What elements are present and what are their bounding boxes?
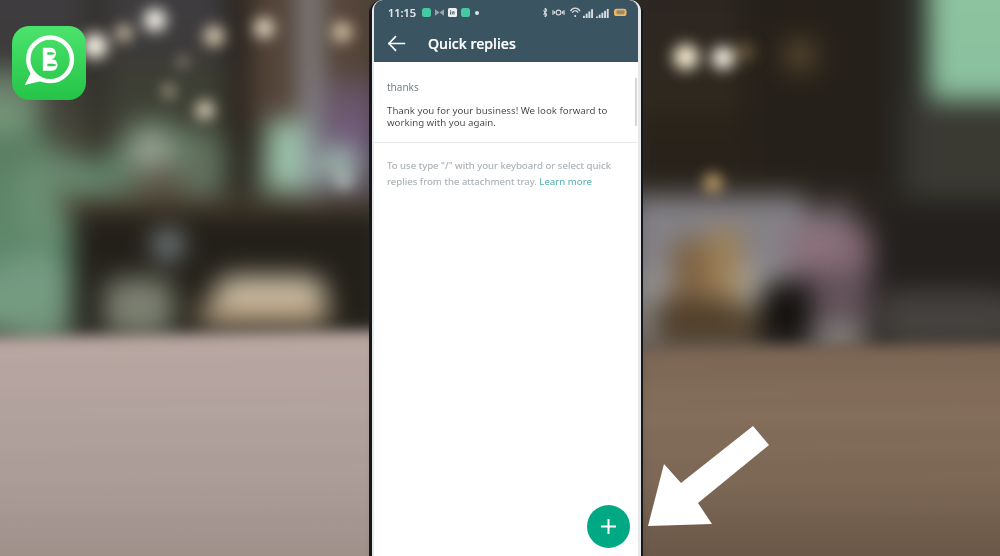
button[interactable]: Back (374, 25, 428, 62)
staticText: Thank you for your business! We look for… (387, 104, 626, 129)
staticText: To use type "/" with your keyboard or se… (387, 159, 626, 188)
staticText: 11:15 (388, 5, 417, 20)
staticText: thanks (387, 80, 419, 94)
button[interactable]: Add quick reply (587, 505, 630, 548)
button[interactable]: thanks (374, 62, 638, 142)
staticText: Quick replies (428, 34, 516, 53)
